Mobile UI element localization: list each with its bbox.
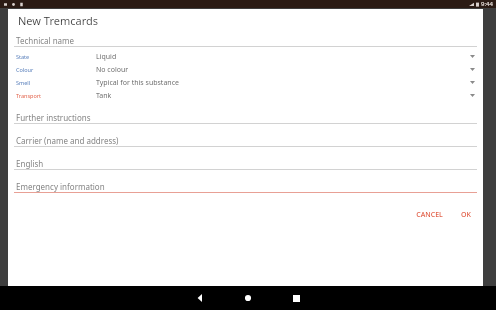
button[interactable]: Technical name [8,31,483,47]
staticText: English [16,158,44,169]
button[interactable]: Recent apps [278,286,314,310]
button[interactable]: OK [457,207,475,223]
button[interactable]: State [8,50,483,63]
staticText: Transport [16,92,96,99]
staticText: Further instructions [16,112,91,123]
staticText: CANCEL [416,210,443,220]
button[interactable]: Emergency information [8,176,483,193]
button[interactable]: Home [230,286,266,310]
staticText: Typical for this substance [96,78,470,88]
staticText: 243,339,664 [207,280,242,288]
staticText: Tank [96,91,470,101]
button[interactable]: Transport [8,89,483,102]
staticText: Carrier (name and address) [16,135,119,146]
button[interactable]: Colour [8,63,483,76]
button[interactable]: Further instructions [8,107,483,124]
staticText: New Tremcards [18,13,99,28]
staticText: Technical name [16,35,75,46]
button[interactable]: CANCEL [412,207,447,223]
button[interactable]: Carrier (name and address) [8,130,483,147]
button[interactable]: English [8,153,483,170]
staticText: No colour [96,65,470,75]
staticText: Colour [16,66,96,73]
staticText: 9:44 [481,0,493,8]
button[interactable]: Back [182,286,218,310]
staticText: Smell [16,79,96,86]
button[interactable]: Smell [8,76,483,89]
staticText: OK [461,210,471,220]
staticText: Liquid [96,52,470,62]
staticText: State [16,53,96,60]
staticText: Emergency information [16,181,105,192]
staticText: Special provisions (4) [130,281,179,288]
